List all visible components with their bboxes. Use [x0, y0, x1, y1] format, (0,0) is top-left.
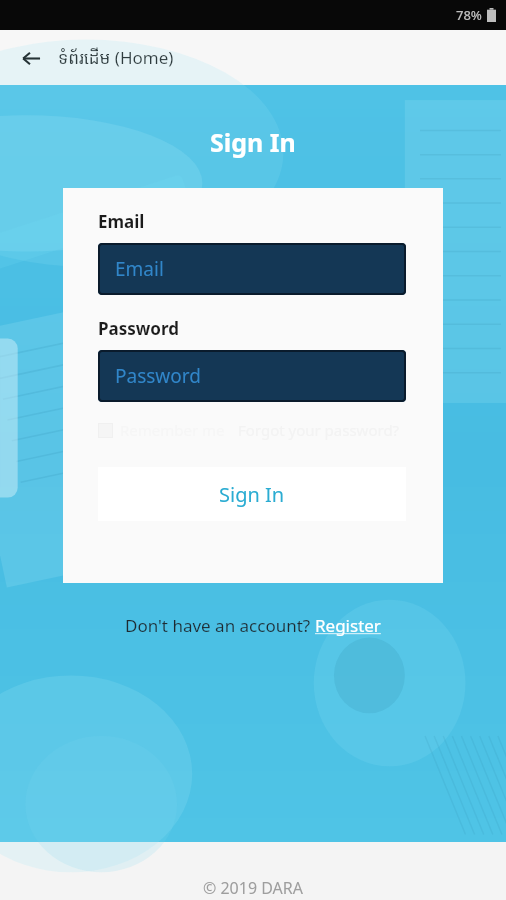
staticText: Password — [98, 317, 179, 340]
button[interactable]: Register — [315, 614, 381, 637]
staticText: Sign In — [219, 481, 285, 508]
staticText: ទំព័រដើម (Home) — [58, 46, 174, 69]
staticText: Register — [315, 614, 381, 637]
staticText: Email — [98, 210, 145, 233]
button[interactable]: Sign In — [98, 467, 406, 521]
staticText: Don't have an account? — [125, 614, 315, 637]
staticText: 78% — [456, 6, 482, 24]
button[interactable]: Password — [98, 350, 406, 402]
staticText: © 2019 DARA — [203, 877, 304, 899]
staticText: Password — [115, 363, 201, 389]
staticText: Sign In — [210, 125, 296, 159]
staticText: Email — [115, 256, 164, 282]
button[interactable]: Email — [98, 243, 406, 295]
button[interactable]: Back — [16, 43, 46, 73]
